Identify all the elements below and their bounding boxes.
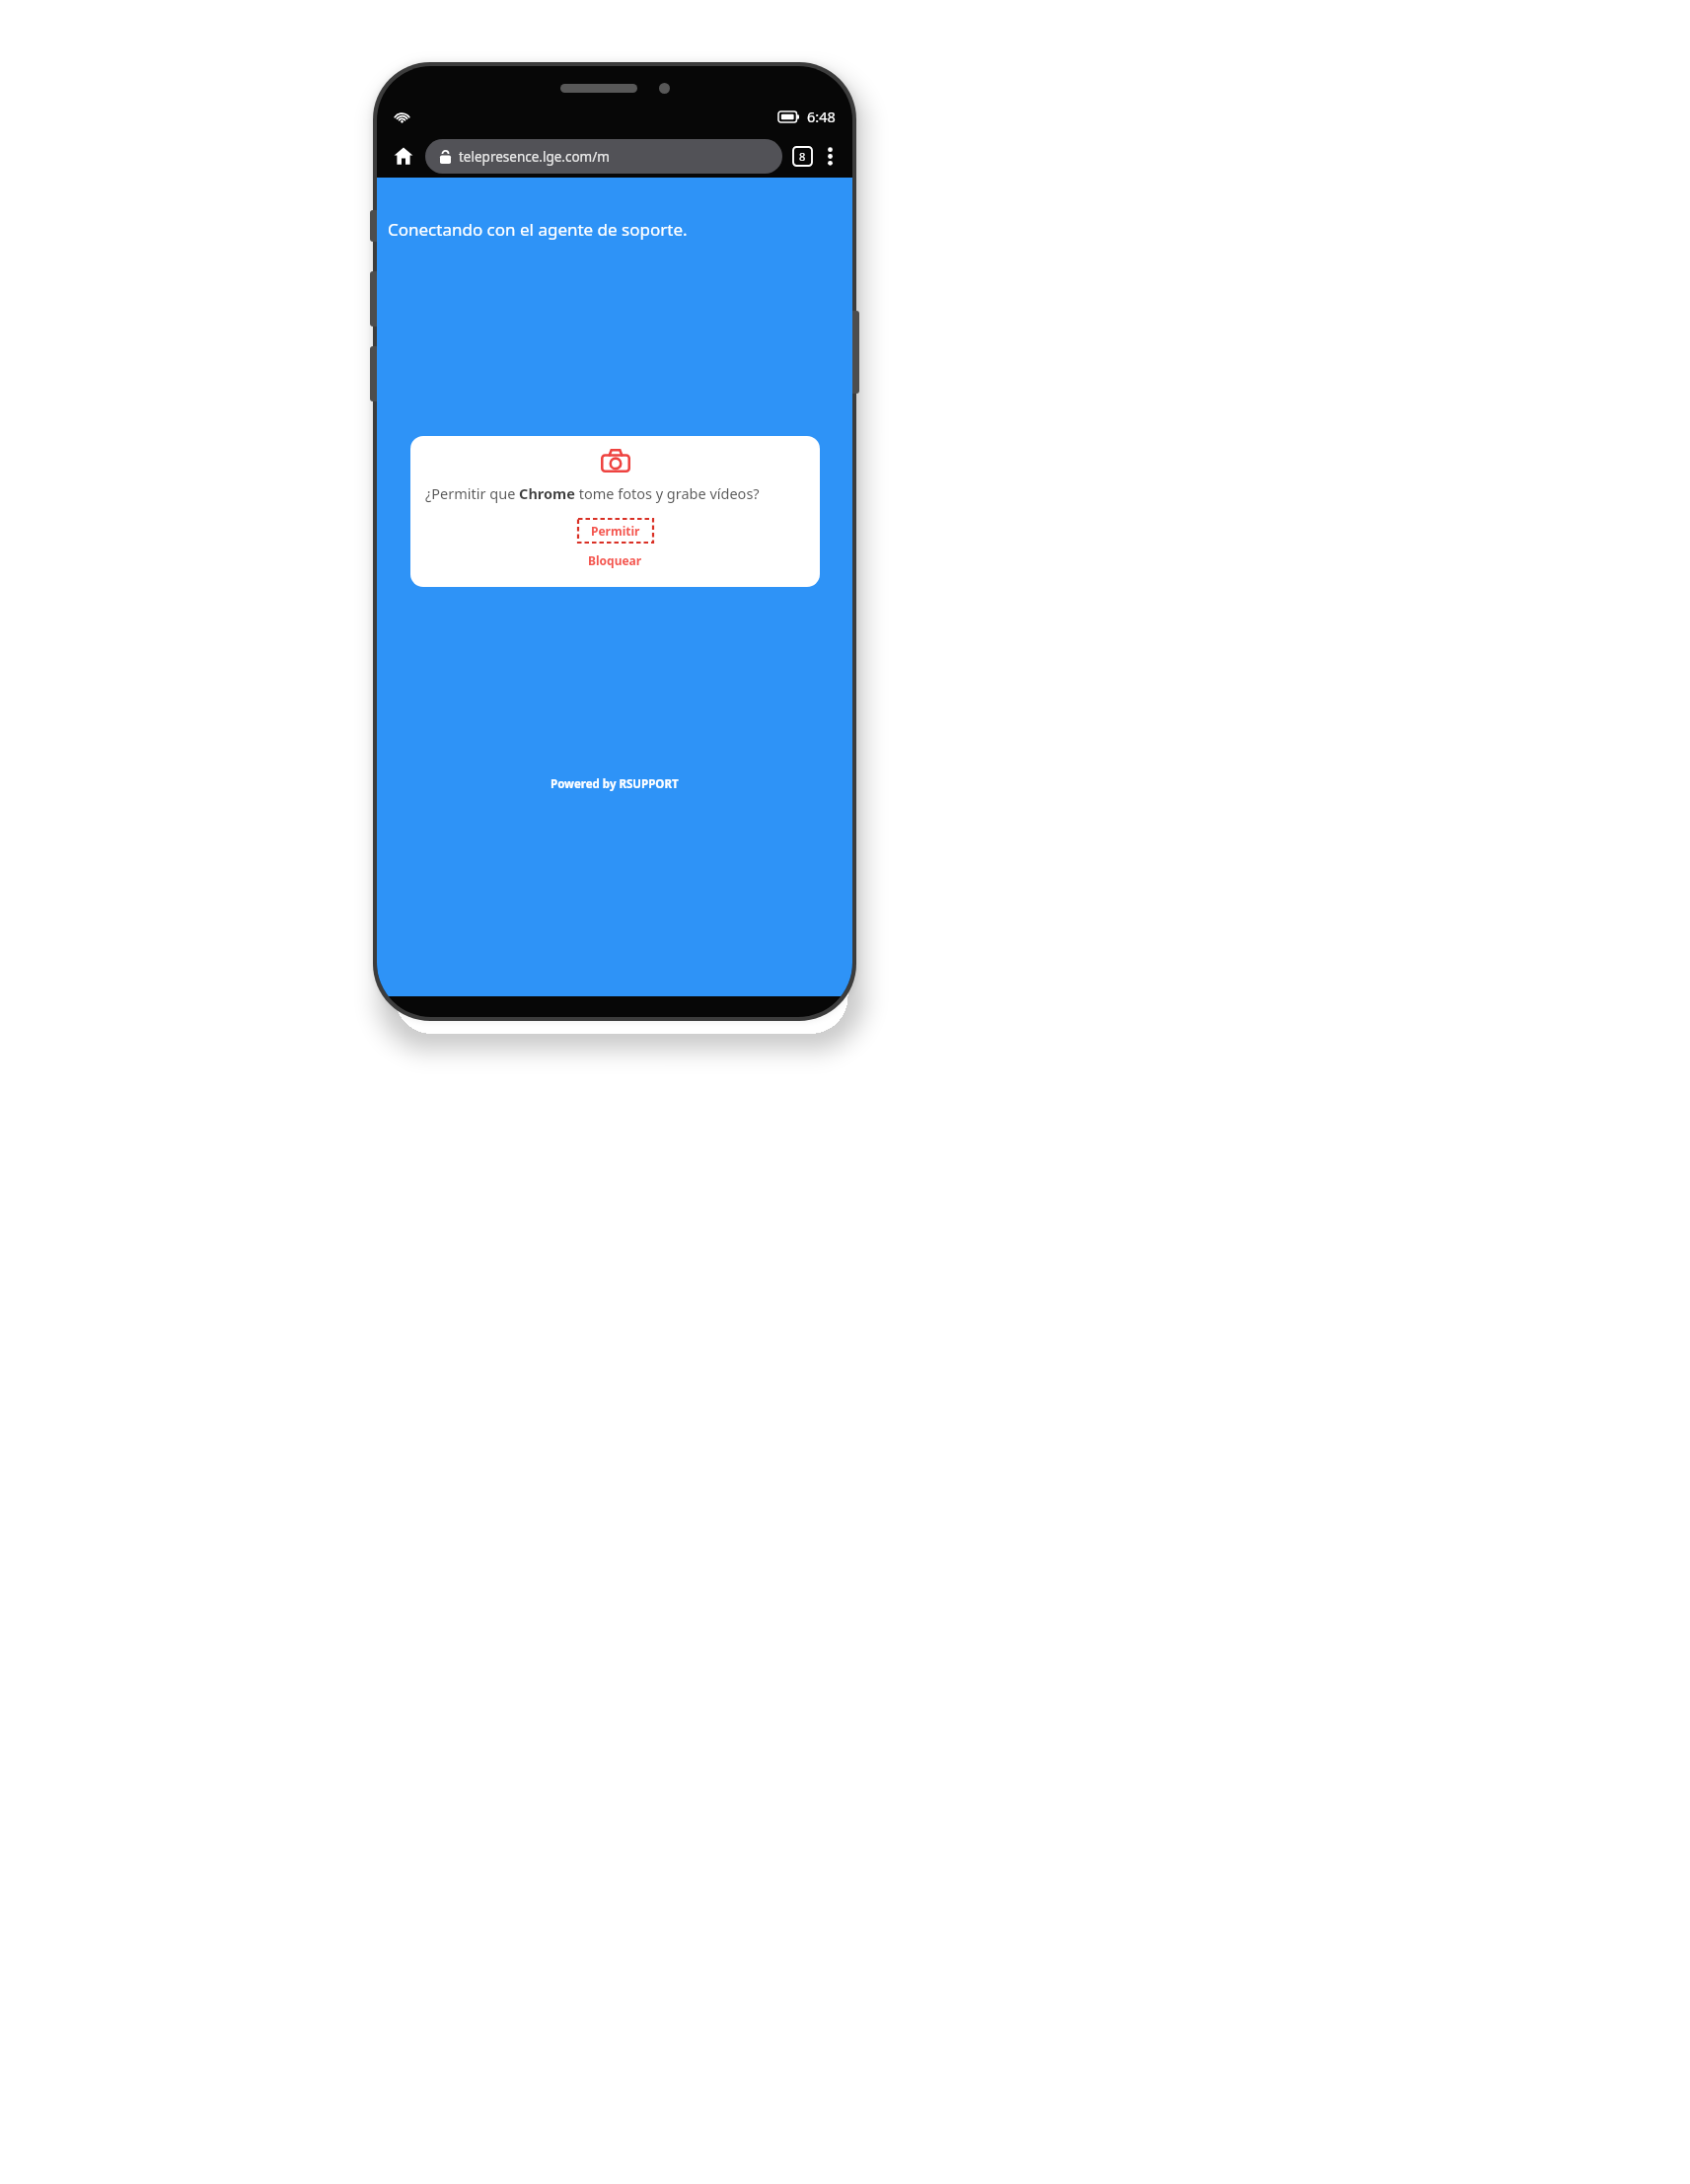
button[interactable]: Permitir bbox=[577, 518, 654, 544]
button[interactable]: Tabs, 8 open bbox=[789, 143, 815, 169]
staticText: 6:48 bbox=[807, 107, 836, 126]
staticText: Permitir bbox=[591, 523, 640, 539]
staticText: Powered by RSUPPORT bbox=[551, 776, 679, 792]
button[interactable]: Home bbox=[388, 140, 419, 172]
staticText: Bloquear bbox=[588, 552, 642, 568]
button[interactable]: Bloquear bbox=[576, 549, 654, 571]
staticText: telepresence.lge.com/m bbox=[459, 148, 610, 166]
staticText: Conectando con el agente de soporte. bbox=[388, 218, 688, 241]
button[interactable]: More options bbox=[818, 144, 842, 168]
button[interactable]: telepresence.lge.com/m bbox=[425, 139, 782, 174]
staticText: ¿Permitir que Chrome tome fotos y grabe … bbox=[425, 483, 805, 503]
staticText: 8 bbox=[799, 149, 806, 164]
